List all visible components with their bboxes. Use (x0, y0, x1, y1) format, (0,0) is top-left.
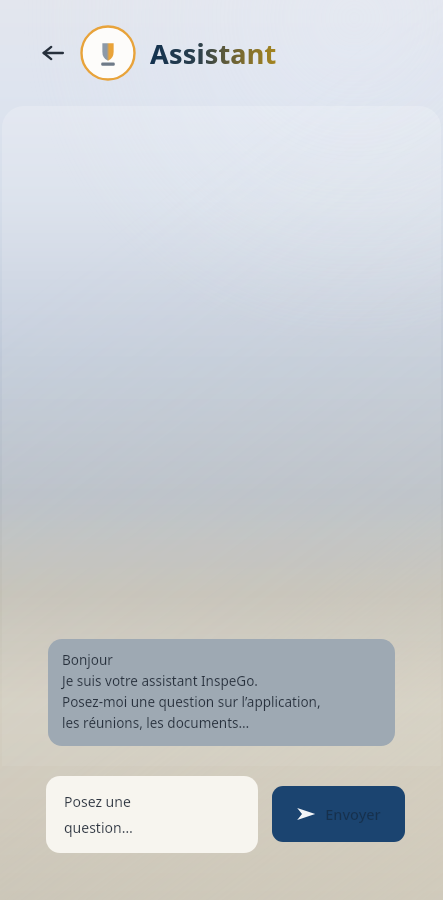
staticText: Assistant (150, 35, 277, 72)
button[interactable]: Envoyer (272, 786, 405, 842)
staticText: Envoyer (325, 804, 381, 824)
staticText: Posez une question… (64, 792, 133, 838)
button[interactable]: Back (36, 36, 70, 70)
button[interactable]: Posez une question… (46, 776, 258, 853)
button[interactable]: Bonjour Je suis votre assistant InspeGo.… (48, 639, 395, 746)
staticText: Bonjour Je suis votre assistant InspeGo.… (62, 651, 321, 732)
button[interactable]: InspeGo logo (80, 25, 136, 81)
